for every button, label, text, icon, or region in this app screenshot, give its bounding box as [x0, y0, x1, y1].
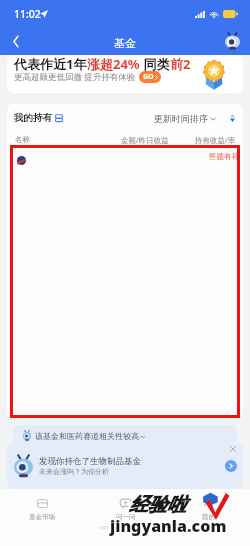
staticText: GO [143, 72, 154, 82]
staticText: 更新时间排序 [154, 113, 208, 124]
staticText: jingyanla.com [109, 515, 226, 537]
staticText: jingyanla.com [110, 515, 227, 537]
button[interactable]: Close [228, 444, 238, 454]
staticText: jingyanla.com [112, 515, 229, 537]
button[interactable]: 我的 [167, 497, 250, 521]
staticText: jingyanla.com [110, 516, 227, 538]
button[interactable]: GO [143, 72, 158, 82]
staticText: 金额/昨日收益 [121, 135, 169, 145]
staticText: 经验啦 [128, 494, 185, 518]
staticText: 答题有礼 [209, 152, 239, 161]
staticText: 问一问 [116, 513, 136, 521]
staticText: 经验啦 [130, 494, 187, 518]
button[interactable]: Sort order [226, 111, 238, 125]
button[interactable]: Back [4, 29, 28, 53]
button[interactable]: 基金市场 [0, 497, 84, 521]
staticText: jingyanla.com [110, 513, 227, 535]
staticText: 涨超24% [87, 55, 140, 73]
staticText: jingyanla.com [110, 517, 227, 539]
staticText: jingyanla.com [111, 515, 228, 537]
button[interactable]: Open analysis [225, 460, 237, 472]
staticText: 持有收益/率 [195, 135, 236, 145]
staticText: 基金市场 [29, 513, 55, 521]
staticText: 经验啦 [129, 491, 186, 515]
staticText: jingyanla.com [109, 516, 226, 538]
staticText: 经验啦 [128, 492, 185, 516]
staticText: jingyanla.com [109, 514, 226, 536]
button[interactable]: 发现你持仓了生物制品基金 [7, 443, 243, 489]
staticText: 未来会涨吗？为你分析 [39, 467, 109, 476]
staticText: 经验啦 [128, 493, 185, 517]
staticText: 发现你持仓了生物制品基金 [39, 456, 141, 467]
staticText: jingyanla.com [108, 515, 225, 537]
staticText: 前2 [170, 55, 191, 73]
staticText: 代表作近1年 [14, 55, 87, 73]
button[interactable]: 代表作近1年 [7, 55, 243, 93]
staticText: 经验啦 [131, 493, 188, 517]
button[interactable]: AI assistant [222, 31, 242, 51]
staticText: 经验啦 [130, 493, 187, 517]
staticText: 名称 [15, 135, 30, 144]
staticText: jingyanla.com [111, 516, 228, 538]
staticText: 该基金和医药赛道相关性较高～ [35, 431, 147, 441]
staticText: 经验啦 [129, 495, 186, 519]
staticText: 同类 [140, 55, 170, 73]
staticText: 我的 [202, 513, 215, 521]
button[interactable]: 更新时间排序 [154, 113, 216, 124]
staticText: 11:02 [14, 7, 41, 21]
staticText: 更高超额更低回撤 提升持有体验 [14, 71, 136, 83]
button[interactable]: 问一问 [84, 497, 167, 521]
button[interactable]: 该基金和医药赛道相关性较高～ [13, 425, 237, 449]
staticText: jingyanla.com [110, 515, 227, 537]
staticText: 经验啦 [129, 492, 186, 516]
staticText: 经验啦 [129, 493, 186, 517]
staticText: 我的持有 [14, 112, 52, 124]
staticText: 经验啦 [127, 493, 184, 517]
staticText: 经验啦 [129, 493, 186, 517]
staticText: jingyanla.com [111, 514, 228, 536]
staticText: 经验啦 [129, 494, 186, 518]
staticText: 基金 [114, 36, 136, 50]
staticText: jingyanla.com [110, 514, 227, 536]
staticText: 经验啦 [130, 492, 187, 516]
